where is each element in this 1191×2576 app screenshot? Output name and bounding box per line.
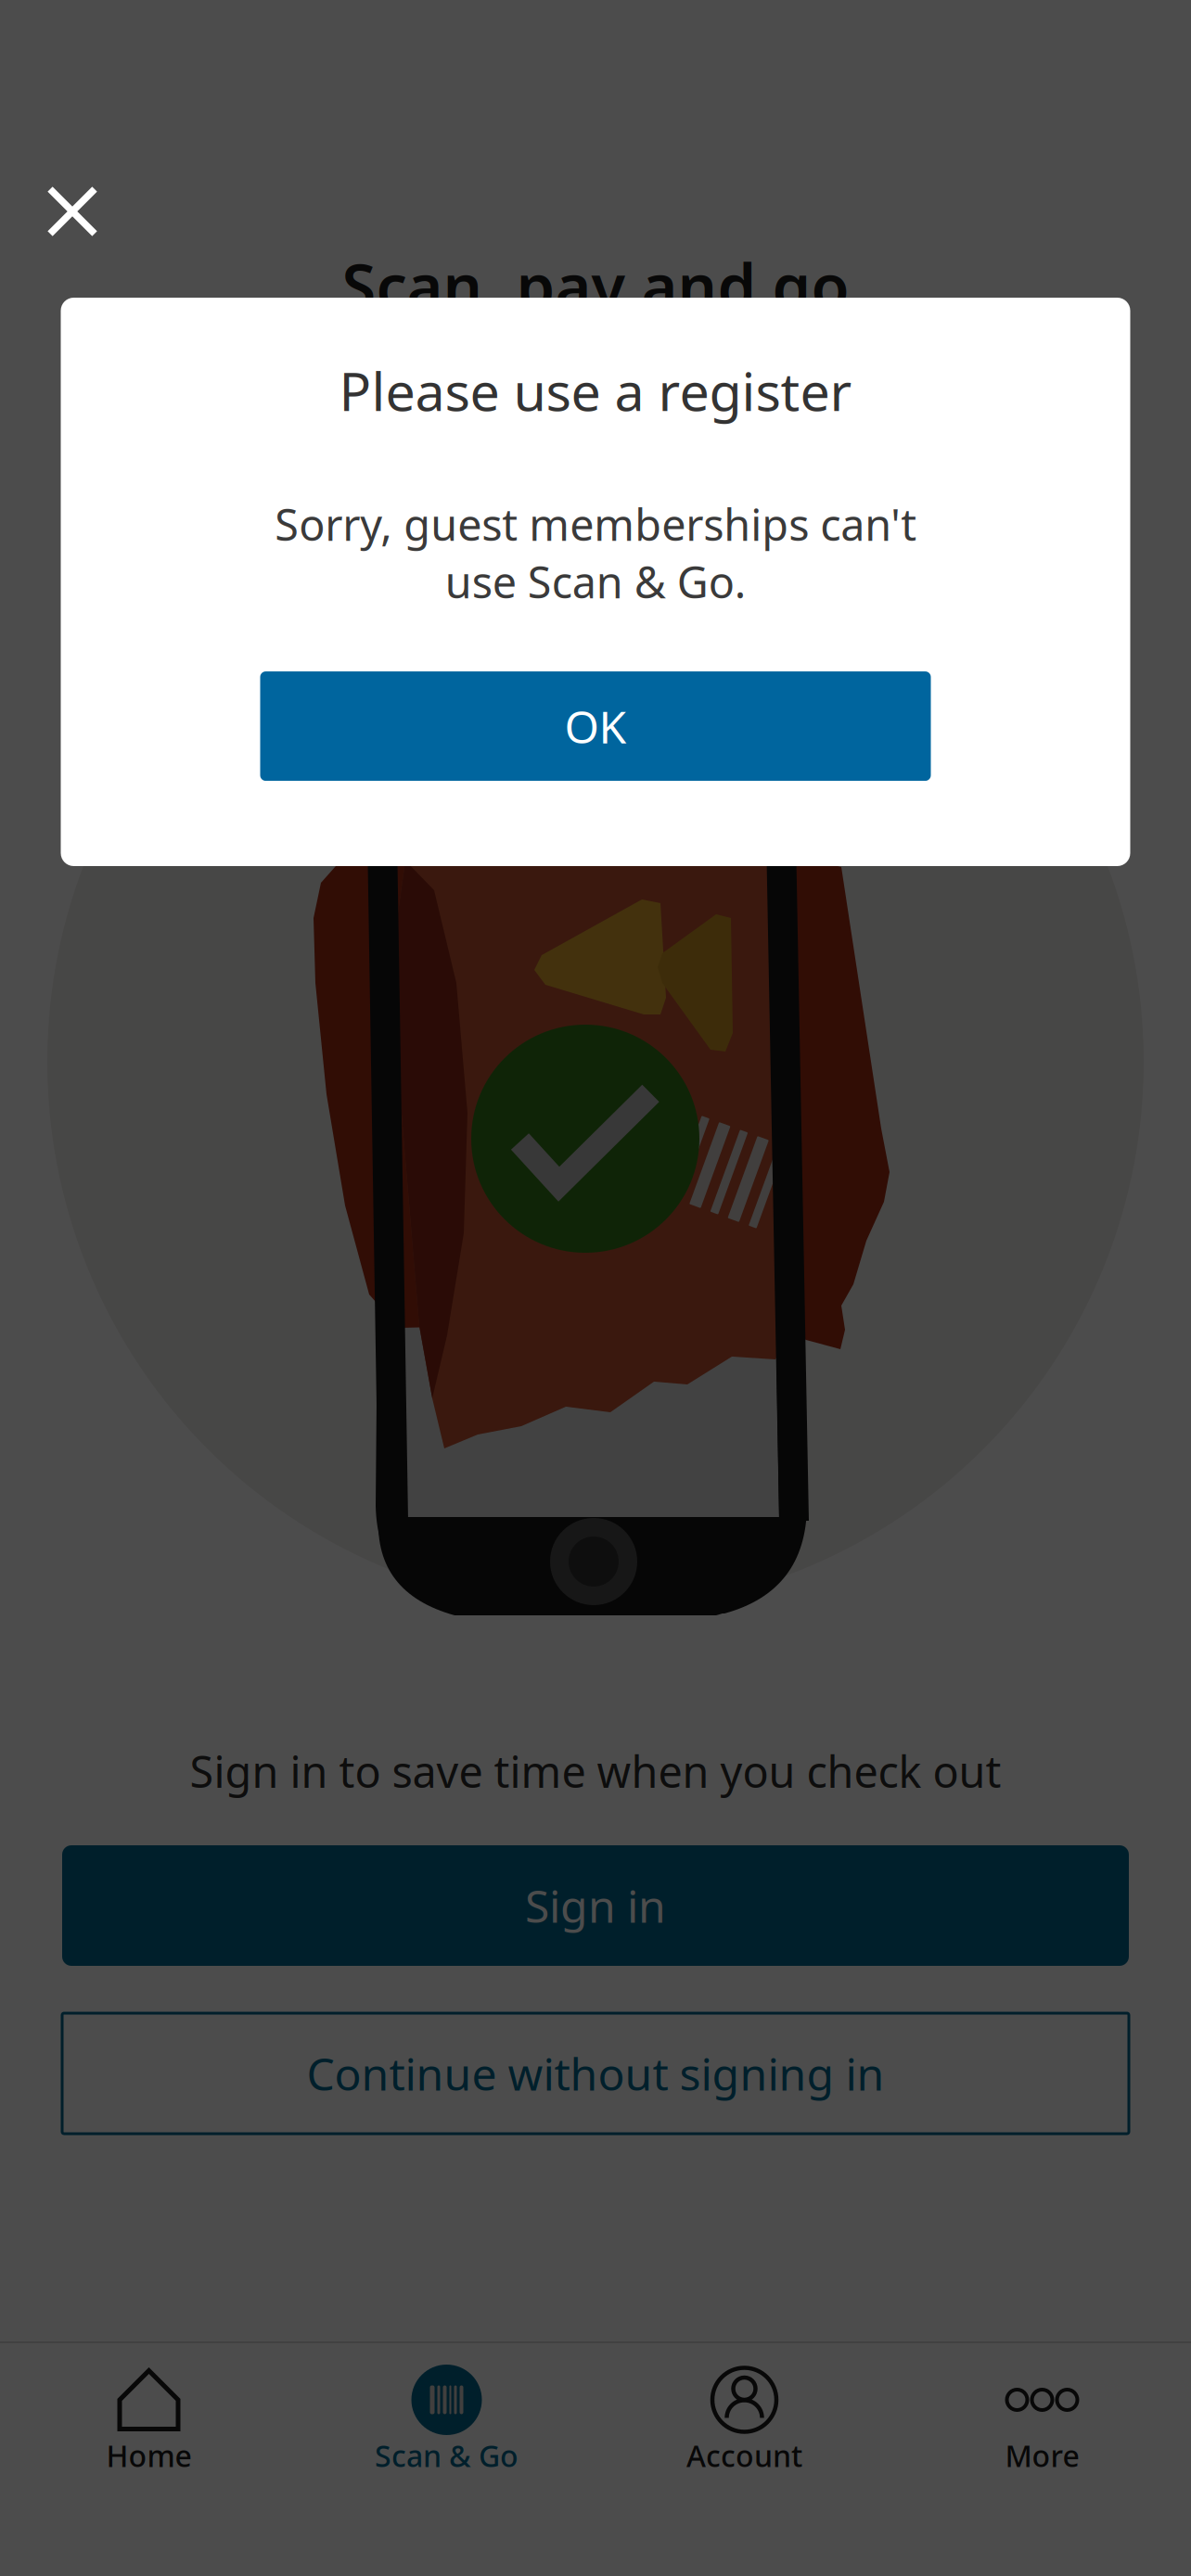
staticText: More bbox=[1005, 2436, 1079, 2475]
button[interactable]: Sign in bbox=[62, 1845, 1129, 1966]
staticText: Please use a register bbox=[339, 355, 852, 426]
staticText: Scan & Go bbox=[375, 2436, 519, 2475]
staticText: Continue without signing in bbox=[307, 2044, 884, 2103]
staticText: Sign in bbox=[525, 1876, 666, 1935]
staticText: Home bbox=[106, 2436, 192, 2475]
button[interactable]: Home bbox=[0, 2361, 298, 2480]
button[interactable]: OK bbox=[260, 671, 931, 781]
staticText: OK bbox=[564, 697, 627, 756]
staticText: Scan, pay and go bbox=[342, 244, 849, 326]
button[interactable]: Account bbox=[595, 2361, 893, 2480]
button[interactable]: Close bbox=[26, 165, 119, 258]
staticText: Account bbox=[686, 2436, 802, 2475]
button[interactable]: More bbox=[893, 2361, 1191, 2480]
staticText: Sign in to save time when you check out bbox=[190, 1742, 1001, 1800]
button[interactable]: Scan & Go bbox=[298, 2361, 595, 2480]
staticText: Sorry, guest memberships can't use Scan … bbox=[275, 495, 916, 610]
button[interactable]: Continue without signing in bbox=[62, 2013, 1129, 2134]
